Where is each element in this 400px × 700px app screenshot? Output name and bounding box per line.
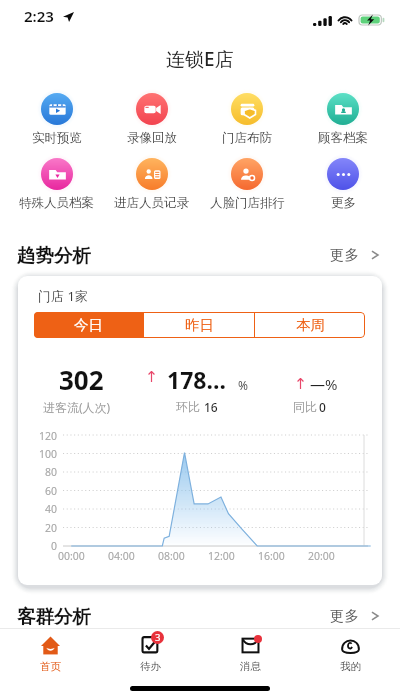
staticText: 进店人员记录 [114, 195, 189, 211]
staticText: 178... [167, 364, 226, 395]
staticText: 昨日 [185, 316, 214, 334]
button[interactable]: 消息 [200, 634, 300, 680]
button[interactable]: 录像回放 [104, 89, 199, 154]
button[interactable]: 更多 [327, 241, 382, 269]
button[interactable]: 顾客档案 [295, 89, 391, 154]
button[interactable]: 人脸门店排行 [199, 154, 295, 219]
staticText: 门店 1家 [38, 287, 88, 305]
button[interactable]: 昨日 [144, 312, 254, 338]
staticText: 100 [39, 447, 58, 461]
staticText: 12:00 [208, 549, 235, 563]
staticText: 04:00 [108, 549, 135, 563]
staticText: 连锁E店 [166, 46, 234, 70]
button[interactable]: 我的 [300, 634, 400, 680]
staticText: 60 [45, 484, 58, 498]
staticText: 待办 [140, 660, 161, 673]
staticText: 更多 [330, 246, 359, 264]
button[interactable]: 更多 [327, 602, 382, 630]
staticText: 环比 [176, 399, 200, 414]
staticText: 40 [45, 502, 58, 516]
button[interactable]: 实时预览 [9, 89, 104, 154]
staticText: 录像回放 [127, 130, 177, 146]
staticText: 08:00 [158, 549, 185, 563]
staticText: 今日 [74, 316, 103, 334]
button[interactable]: 更多 [295, 154, 391, 219]
staticText: 本周 [296, 316, 325, 334]
staticText: 120 [39, 429, 58, 443]
button[interactable]: 进店人员记录 [104, 154, 199, 219]
staticText: 特殊人员档案 [19, 195, 94, 211]
staticText: % [238, 377, 248, 393]
button[interactable]: 特殊人员档案 [9, 154, 104, 219]
staticText: 16 [204, 399, 218, 415]
staticText: 进客流(人次) [43, 399, 111, 415]
staticText: 20:00 [308, 549, 335, 563]
button[interactable]: 本周 [255, 312, 365, 338]
staticText: 同比 [293, 399, 317, 414]
staticText: 人脸门店排行 [210, 195, 285, 211]
staticText: 更多 [331, 195, 356, 211]
staticText: 消息 [240, 660, 261, 673]
staticText: 2:23 [24, 6, 54, 26]
staticText: 客群分析 [17, 605, 91, 628]
staticText: 我的 [340, 660, 361, 673]
button[interactable]: 首页 [0, 634, 100, 680]
staticText: 趋势分析 [17, 244, 91, 267]
staticText: 0 [51, 539, 58, 553]
staticText: 门店布防 [222, 130, 272, 146]
staticText: 3 [155, 631, 161, 644]
staticText: 20 [45, 521, 58, 535]
staticText: 更多 [330, 607, 359, 625]
staticText: 顾客档案 [318, 130, 368, 146]
button[interactable]: 待办 [100, 634, 200, 680]
staticText: 0 [319, 399, 326, 415]
staticText: —% [310, 374, 338, 394]
staticText: 80 [45, 465, 58, 479]
button[interactable]: 今日 [34, 312, 143, 338]
staticText: 302 [59, 362, 104, 397]
staticText: 首页 [40, 660, 61, 673]
staticText: 16:00 [258, 549, 285, 563]
button[interactable]: 门店布防 [199, 89, 295, 154]
staticText: 实时预览 [32, 130, 82, 146]
staticText: 00:00 [58, 549, 85, 563]
